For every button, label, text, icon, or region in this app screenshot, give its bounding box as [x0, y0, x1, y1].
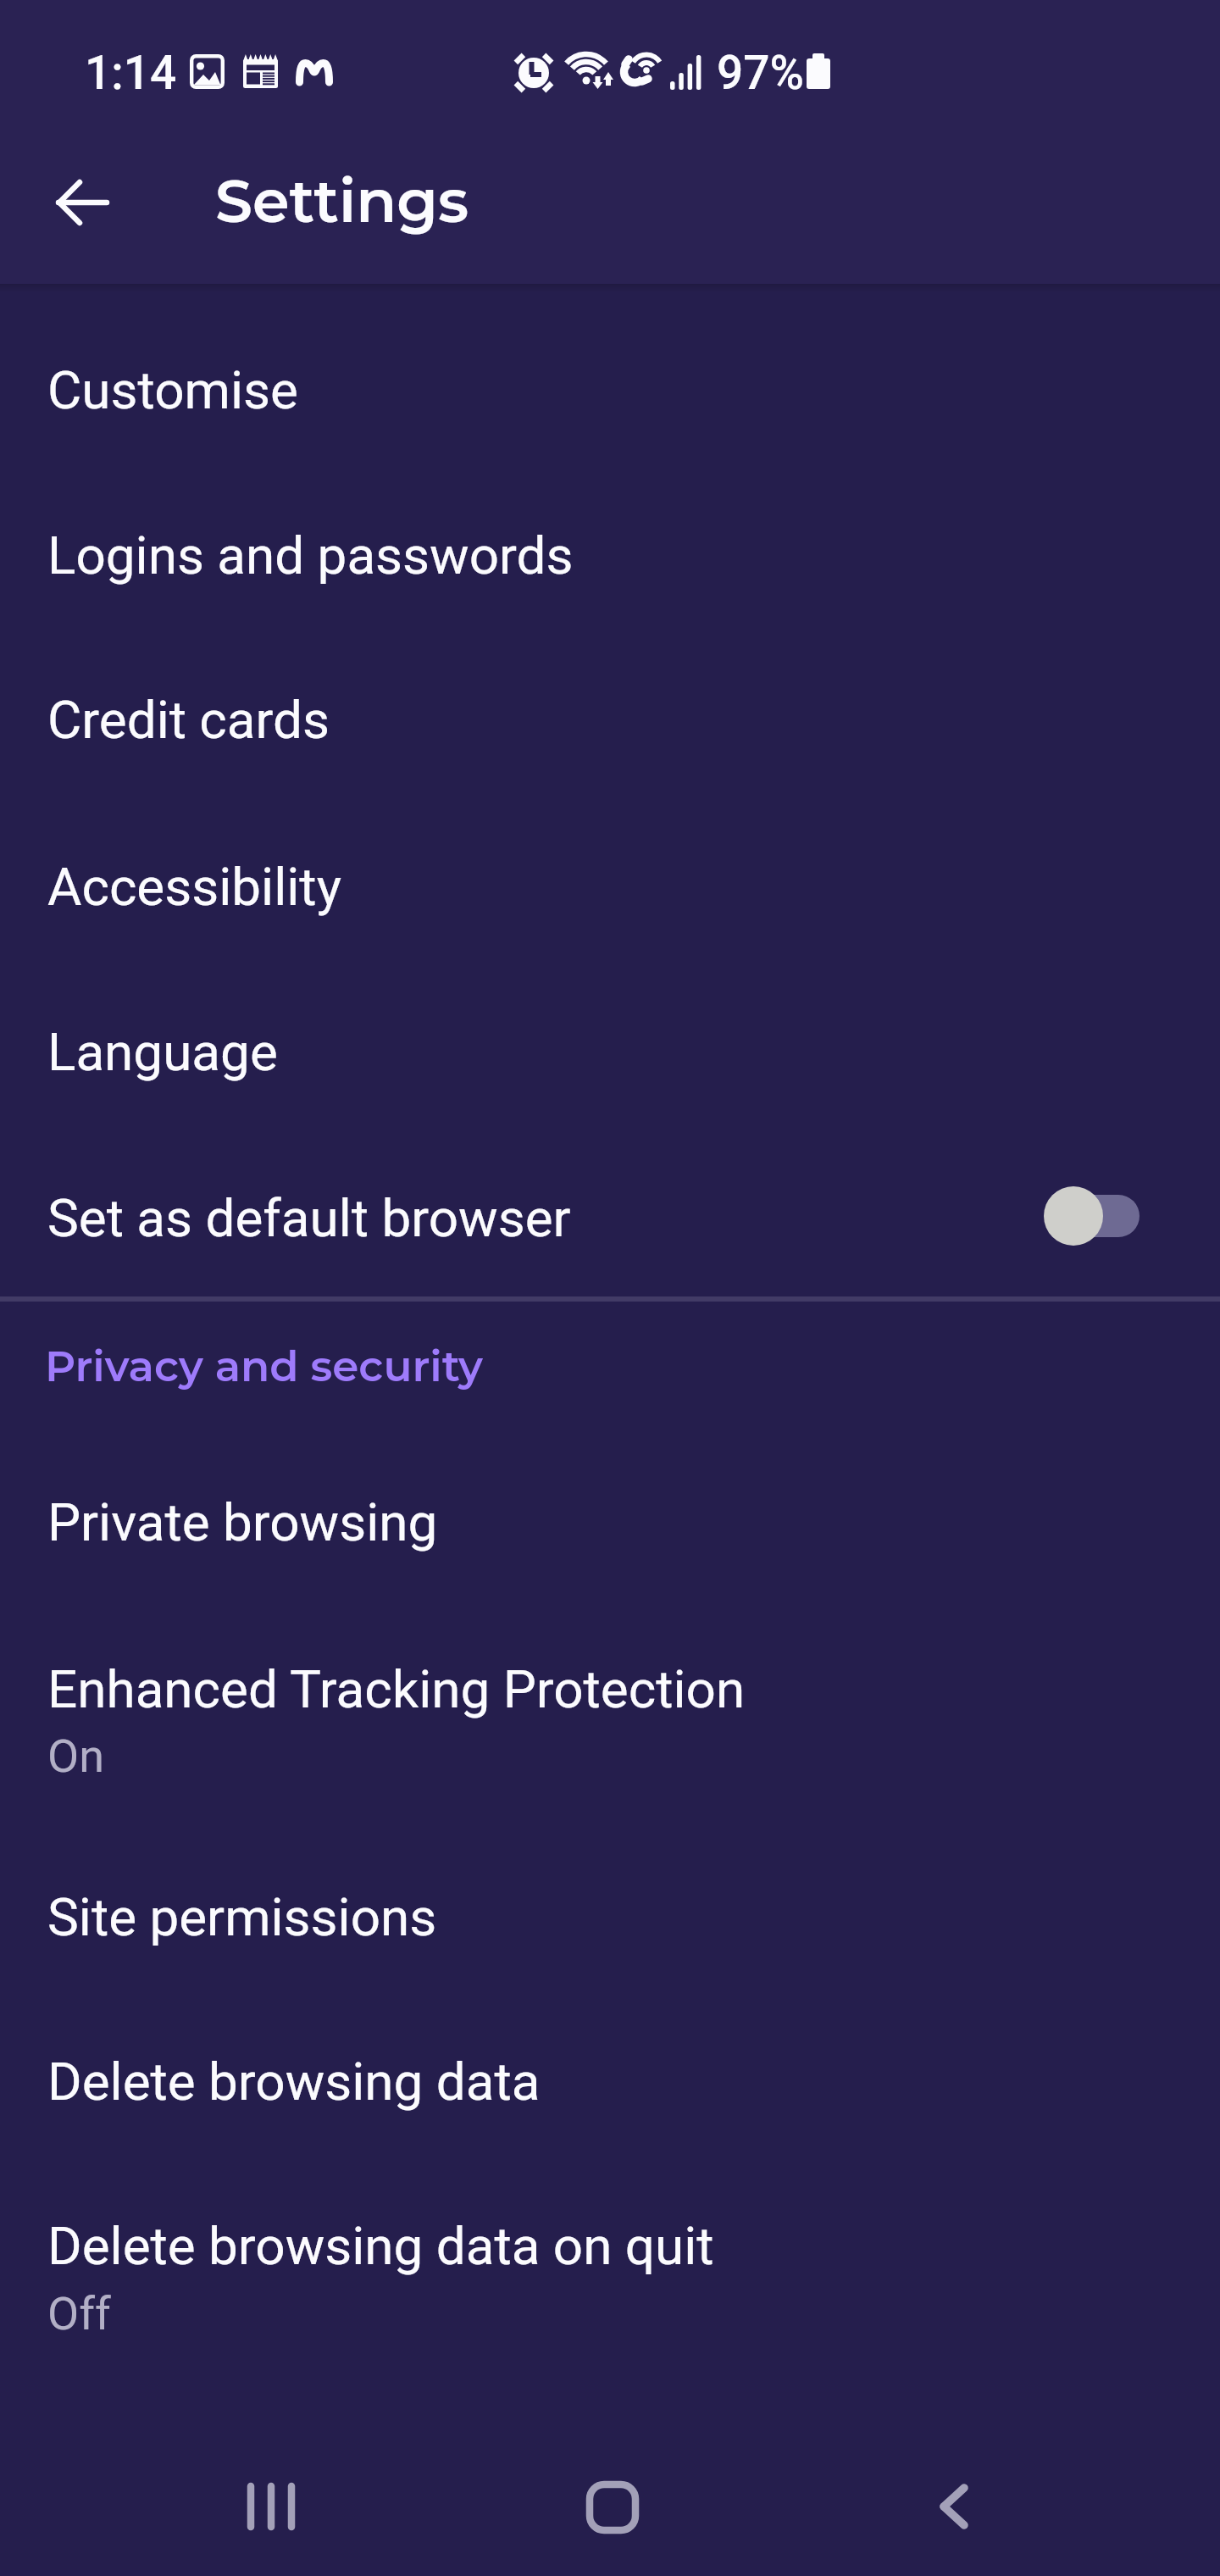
staticText: Off	[47, 2287, 111, 2340]
button[interactable]: Customise	[0, 310, 1220, 471]
button[interactable]: Site permissions	[0, 1837, 1220, 1998]
button[interactable]: Credit cards	[0, 640, 1220, 801]
staticText: 97%	[717, 46, 805, 100]
staticText: Settings	[215, 164, 469, 236]
button[interactable]: Language	[0, 972, 1220, 1133]
button[interactable]: Accessibility	[0, 807, 1220, 968]
staticText: Enhanced Tracking Protection	[47, 1658, 746, 1720]
staticText: Site permissions	[47, 1886, 437, 1948]
button[interactable]: Navigate up	[33, 153, 131, 251]
button[interactable]: Delete browsing data on quit	[0, 2166, 1220, 2391]
staticText: Delete browsing data on quit	[47, 2215, 714, 2277]
button[interactable]: Home	[544, 2459, 679, 2554]
staticText: Set as default browser	[47, 1187, 571, 1249]
staticText: Privacy and security	[45, 1341, 483, 1392]
staticText: Credit cards	[47, 689, 330, 751]
staticText: Accessibility	[47, 856, 341, 918]
staticText: Customise	[47, 359, 298, 421]
button[interactable]: Set as default browser, off	[1036, 1178, 1155, 1254]
button[interactable]: Delete browsing data	[0, 2001, 1220, 2162]
staticText: Language	[47, 1021, 278, 1083]
button[interactable]: Private browsing	[0, 1442, 1220, 1603]
button[interactable]: Logins and passwords	[0, 475, 1220, 636]
staticText: 1:14	[85, 46, 177, 100]
staticText: Delete browsing data	[47, 2051, 541, 2112]
button[interactable]: Enhanced Tracking Protection	[0, 1609, 1220, 1835]
staticText: On	[47, 1729, 104, 1783]
staticText: Private browsing	[47, 1491, 438, 1553]
button[interactable]: Back	[878, 2459, 1013, 2554]
button[interactable]: Set as default browser	[0, 1138, 1220, 1299]
button[interactable]: Recent apps	[203, 2459, 339, 2554]
staticText: Logins and passwords	[47, 525, 574, 586]
